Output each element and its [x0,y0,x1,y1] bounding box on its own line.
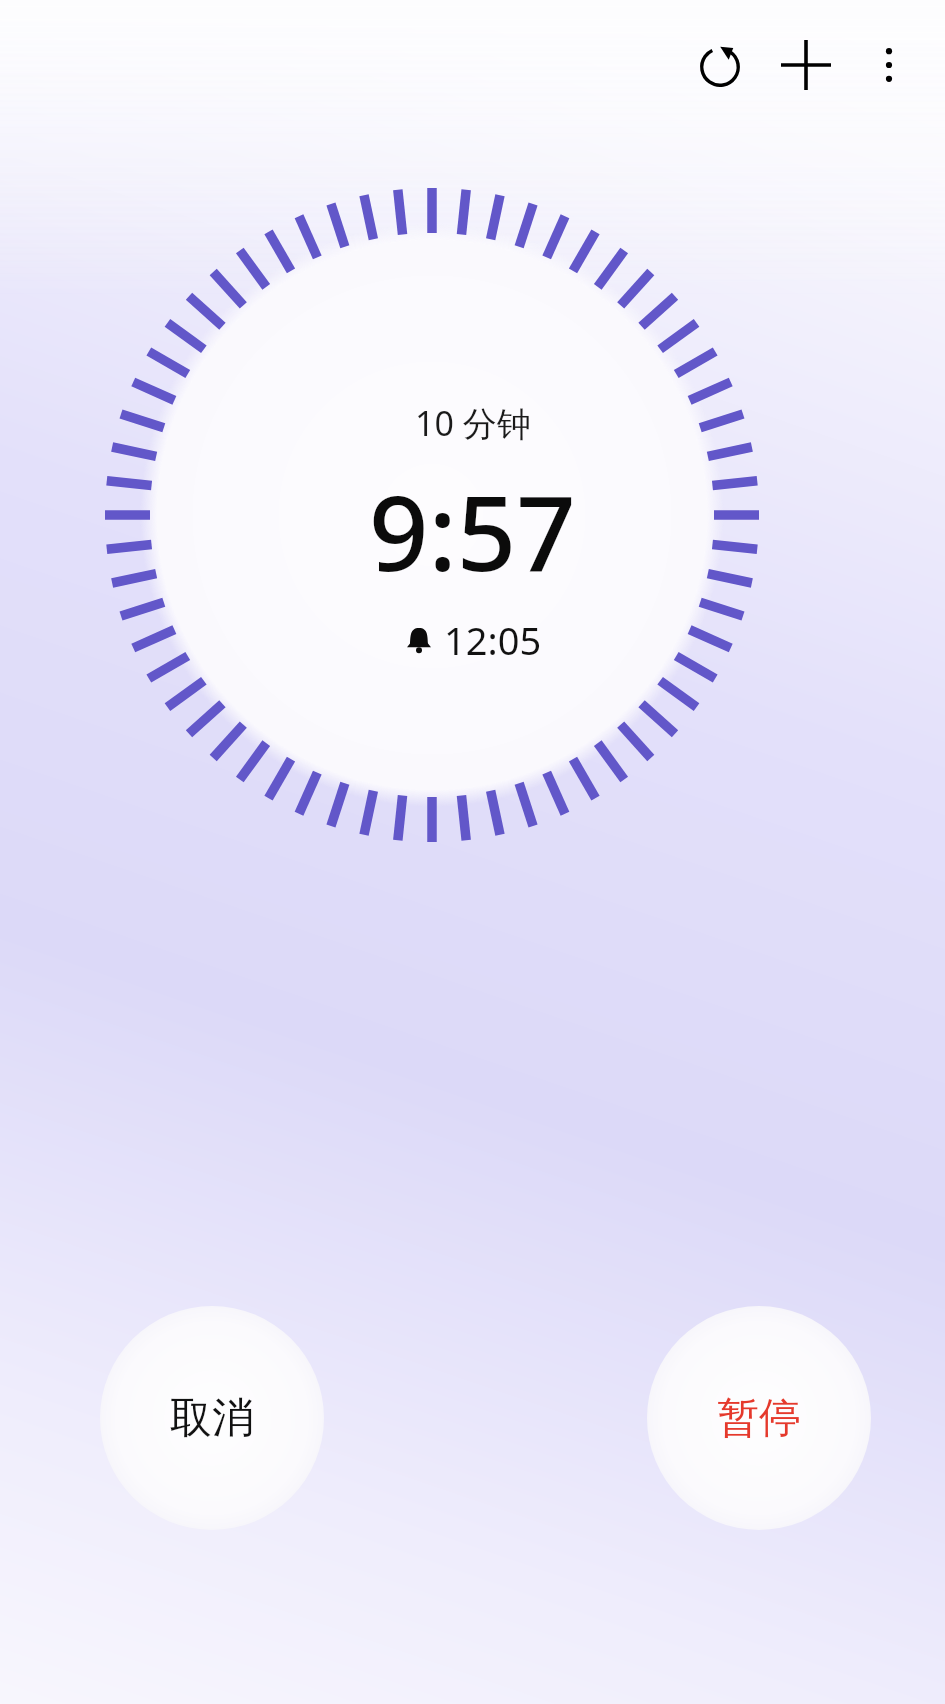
staticText: 12:05 [444,614,542,666]
button[interactable]: 暂停 [647,1306,871,1530]
staticText: 取消 [170,1392,254,1445]
button[interactable]: Reset [677,22,763,108]
staticText: 10 分钟 [415,400,531,446]
button[interactable]: Add timer [763,22,849,108]
staticText: 9:57 [369,460,576,602]
button[interactable]: 取消 [100,1306,324,1530]
staticText: 暂停 [717,1392,801,1445]
button[interactable]: More options [849,25,929,105]
